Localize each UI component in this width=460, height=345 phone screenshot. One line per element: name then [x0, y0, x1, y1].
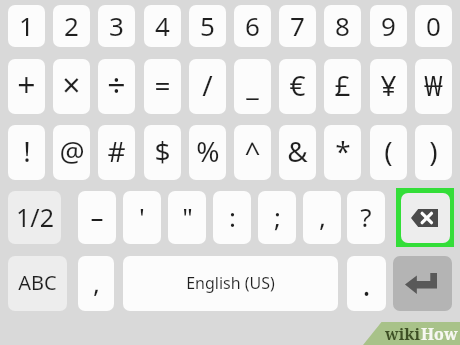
button[interactable]: , — [78, 256, 114, 311]
button[interactable]: . — [347, 256, 386, 311]
button[interactable]: _ — [234, 59, 271, 114]
staticText: ABC — [18, 269, 57, 296]
staticText: English (US) — [186, 272, 275, 294]
button[interactable]: ' — [123, 191, 161, 244]
button[interactable]: 0 — [415, 5, 452, 47]
staticText: , — [93, 265, 100, 300]
staticText: £ — [334, 66, 351, 104]
staticText: How — [421, 323, 458, 345]
button[interactable]: 1 — [8, 5, 45, 47]
staticText: ( — [384, 132, 393, 170]
staticText: = — [154, 66, 171, 104]
staticText: € — [289, 66, 306, 104]
button[interactable]: 2 — [53, 5, 90, 47]
staticText: 3 — [109, 8, 124, 43]
staticText: ' — [139, 199, 145, 234]
button[interactable]: ¥ — [370, 59, 407, 114]
staticText: / — [202, 66, 213, 104]
button[interactable]: 1/2 — [8, 191, 61, 244]
button[interactable]: ABC — [8, 256, 67, 311]
button[interactable]: , — [303, 191, 341, 244]
button[interactable]: ^ — [234, 125, 271, 180]
staticText: ? — [360, 199, 372, 234]
button[interactable]: $ — [144, 125, 181, 180]
button[interactable]: 7 — [279, 5, 316, 47]
button[interactable]: Backspace — [401, 193, 450, 243]
staticText: @ — [59, 132, 85, 170]
button[interactable]: = — [144, 59, 181, 114]
button[interactable]: / — [189, 59, 226, 114]
staticText: – — [90, 199, 104, 234]
button[interactable]: 5 — [189, 5, 226, 47]
staticText: : — [229, 199, 236, 234]
staticText: , — [319, 199, 326, 234]
button[interactable]: £ — [324, 59, 361, 114]
staticText: 5 — [200, 8, 215, 43]
button[interactable]: + — [8, 59, 45, 114]
button[interactable]: # — [98, 125, 135, 180]
staticText: 1 — [19, 8, 34, 43]
staticText: wiki — [385, 323, 421, 345]
button[interactable]: × — [53, 59, 90, 114]
staticText: ¥ — [380, 66, 397, 104]
staticText: 6 — [245, 8, 260, 43]
button[interactable]: 9 — [370, 5, 407, 47]
button[interactable]: Enter — [393, 256, 452, 311]
button[interactable]: ! — [8, 125, 45, 180]
button[interactable]: 4 — [144, 5, 181, 47]
button[interactable]: ) — [415, 125, 452, 180]
staticText: + — [17, 63, 36, 107]
staticText: ; — [274, 199, 281, 234]
button[interactable]: @ — [53, 125, 90, 180]
button[interactable]: – — [78, 191, 116, 244]
button[interactable]: 3 — [98, 5, 135, 47]
button[interactable]: % — [189, 125, 226, 180]
staticText: 7 — [290, 8, 305, 43]
staticText: 9 — [381, 8, 396, 43]
staticText: _ — [246, 66, 259, 104]
staticText: * — [335, 132, 351, 170]
staticText: " — [182, 199, 193, 234]
staticText: $ — [154, 132, 171, 170]
button[interactable]: English (US) — [123, 256, 338, 311]
button[interactable]: " — [168, 191, 206, 244]
staticText: 4 — [155, 8, 170, 43]
button[interactable]: : — [213, 191, 251, 244]
button[interactable]: 6 — [234, 5, 271, 47]
staticText: ÷ — [107, 63, 126, 107]
button[interactable]: ₩ — [415, 59, 452, 114]
staticText: × — [62, 63, 81, 107]
staticText: ^ — [244, 132, 261, 170]
staticText: ) — [429, 132, 438, 170]
button[interactable]: € — [279, 59, 316, 114]
staticText: . — [362, 264, 371, 305]
button[interactable]: 8 — [324, 5, 361, 47]
button[interactable]: ÷ — [98, 59, 135, 114]
button[interactable]: * — [324, 125, 361, 180]
staticText: ! — [23, 132, 31, 170]
staticText: ₩ — [424, 66, 443, 104]
staticText: % — [196, 132, 220, 170]
button[interactable]: ( — [370, 125, 407, 180]
staticText: & — [287, 132, 308, 170]
staticText: 8 — [335, 8, 350, 43]
staticText: # — [107, 132, 126, 170]
button[interactable]: & — [279, 125, 316, 180]
button[interactable]: ; — [258, 191, 296, 244]
staticText: 0 — [426, 8, 441, 43]
staticText: 1/2 — [16, 200, 54, 234]
staticText: 2 — [64, 8, 79, 43]
button[interactable]: ? — [347, 191, 385, 244]
